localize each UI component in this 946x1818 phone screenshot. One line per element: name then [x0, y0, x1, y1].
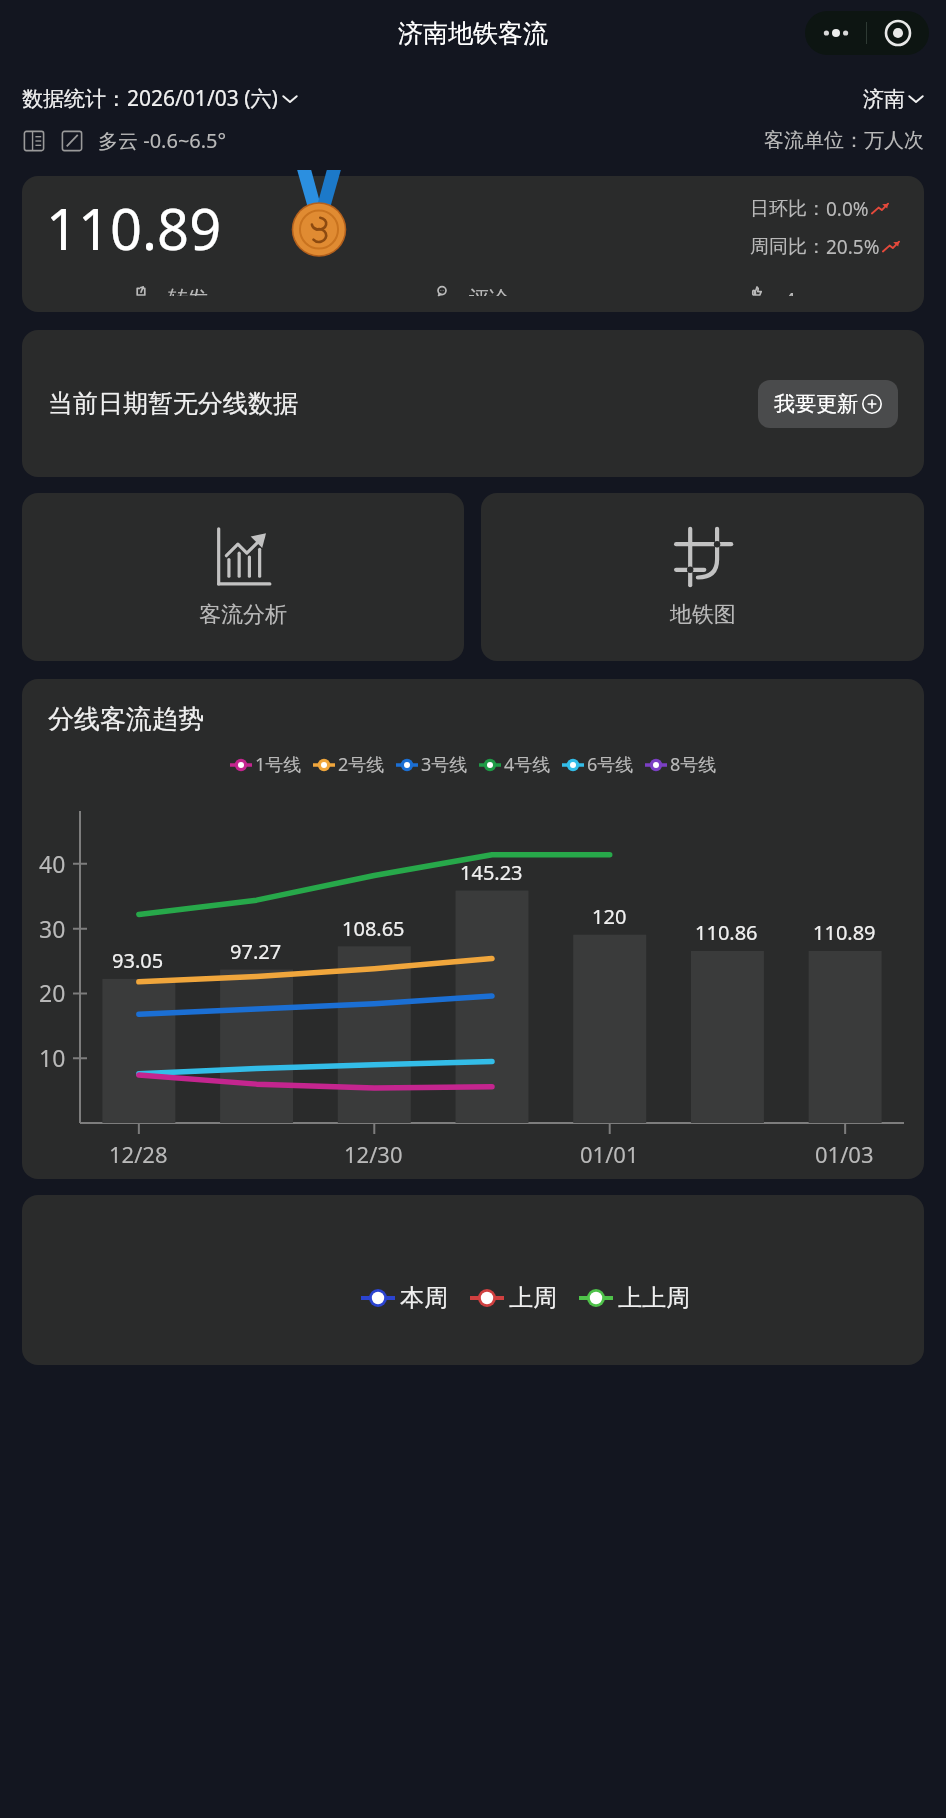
button[interactable]: Close: [867, 11, 929, 55]
staticText: 110.89: [813, 919, 876, 946]
button[interactable]: 济南: [863, 86, 924, 112]
button[interactable]: More options: [805, 11, 866, 55]
button[interactable]: 我要更新: [758, 380, 898, 428]
staticText: 97.27: [230, 938, 282, 965]
button[interactable]: 8号线: [645, 752, 717, 777]
staticText: 济南地铁客流: [398, 18, 548, 49]
staticText: 济南: [863, 86, 905, 112]
staticText: 01/01: [580, 1139, 639, 1169]
staticText: 108.65: [342, 915, 405, 942]
staticText: 110.89: [46, 190, 222, 266]
staticText: 1号线: [255, 752, 302, 777]
staticText: 评论: [469, 286, 509, 296]
staticText: 我要更新: [774, 391, 858, 417]
button[interactable]: 3号线: [396, 752, 468, 777]
staticText: 30: [39, 913, 66, 944]
staticText: 01/03: [815, 1139, 874, 1169]
button[interactable]: Calendar: [22, 129, 46, 153]
staticText: 93.05: [112, 947, 164, 974]
staticText: 10: [39, 1042, 66, 1073]
button[interactable]: 1号线: [230, 752, 302, 777]
staticText: 周同比：: [750, 235, 826, 259]
staticText: 120: [592, 903, 627, 930]
staticText: 2号线: [338, 752, 385, 777]
button[interactable]: 当前日期暂无分线数据: [22, 330, 924, 477]
staticText: 6号线: [587, 752, 634, 777]
button[interactable]: 分线客流趋势: [22, 679, 924, 1179]
staticText: 110.86: [695, 919, 758, 946]
button[interactable]: 4: [623, 280, 924, 302]
staticText: 上上周: [618, 1283, 690, 1313]
button[interactable]: 上上周: [579, 1283, 690, 1313]
staticText: 当前日期暂无分线数据: [48, 388, 298, 419]
staticText: 8号线: [670, 752, 717, 777]
staticText: 40: [39, 848, 66, 879]
staticText: 多云 -0.6~6.5°: [98, 127, 227, 154]
staticText: 12/30: [344, 1139, 403, 1169]
staticText: 客流单位：万人次: [764, 128, 924, 153]
staticText: 0.0%: [826, 196, 869, 222]
staticText: 上周: [509, 1283, 557, 1313]
button[interactable]: 评论: [322, 280, 623, 302]
button[interactable]: 本周: [361, 1283, 448, 1313]
staticText: 转发: [168, 286, 208, 296]
staticText: 数据统计：2026/01/03 (六): [22, 84, 278, 113]
staticText: 20.5%: [826, 234, 880, 260]
button[interactable]: 转发: [22, 280, 322, 302]
button[interactable]: 110.89: [22, 176, 924, 312]
button[interactable]: 客流分析: [22, 493, 464, 661]
button[interactable]: 本周: [22, 1195, 924, 1365]
staticText: 3号线: [421, 752, 468, 777]
button[interactable]: 地铁图: [481, 493, 924, 661]
button[interactable]: 4号线: [479, 752, 551, 777]
staticText: 12/28: [109, 1139, 168, 1169]
button[interactable]: 2号线: [313, 752, 385, 777]
button[interactable]: 6号线: [562, 752, 634, 777]
staticText: 客流分析: [199, 601, 287, 629]
staticText: 地铁图: [670, 601, 736, 629]
staticText: 20: [39, 977, 66, 1008]
staticText: 4: [784, 286, 796, 296]
button[interactable]: Edit: [60, 129, 84, 153]
staticText: 145.23: [460, 859, 523, 886]
staticText: 分线客流趋势: [48, 703, 204, 736]
button[interactable]: 数据统计：2026/01/03 (六): [22, 84, 298, 113]
button[interactable]: 上周: [470, 1283, 557, 1313]
staticText: 4号线: [504, 752, 551, 777]
staticText: 本周: [400, 1283, 448, 1313]
staticText: 日环比：: [750, 197, 826, 221]
